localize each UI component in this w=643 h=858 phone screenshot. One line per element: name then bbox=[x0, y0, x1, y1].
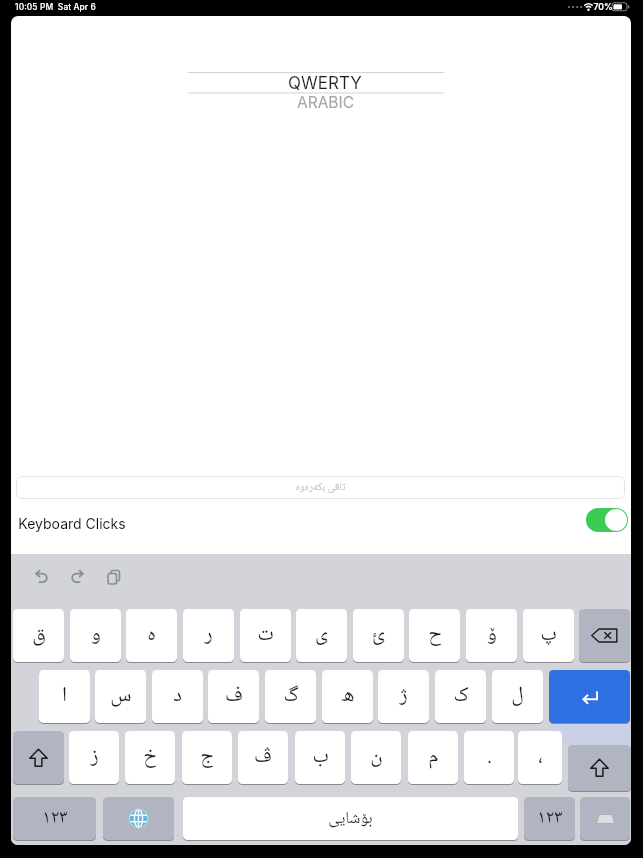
button[interactable]: ، bbox=[518, 731, 562, 784]
staticText: تاقی بکەرەوە bbox=[295, 479, 346, 497]
staticText: و bbox=[91, 618, 101, 654]
staticText: پ bbox=[540, 618, 557, 654]
staticText: ج bbox=[200, 740, 214, 776]
staticText: ل bbox=[511, 679, 524, 715]
button[interactable]: ARABIC bbox=[197, 93, 453, 112]
button[interactable]: تاقی بکەرەوە bbox=[16, 476, 625, 499]
staticText: Keyboard Clicks bbox=[18, 515, 126, 532]
button[interactable]: ن bbox=[351, 731, 401, 784]
button[interactable]: س bbox=[95, 670, 146, 723]
staticText: ڤ bbox=[254, 740, 272, 776]
staticText: ئ bbox=[372, 618, 385, 654]
staticText: گ bbox=[283, 679, 299, 715]
button[interactable] bbox=[103, 797, 174, 840]
staticText: د bbox=[173, 679, 182, 715]
button[interactable]: و bbox=[70, 609, 121, 662]
staticText: ر bbox=[204, 618, 213, 654]
staticText: ح bbox=[428, 618, 442, 654]
button[interactable]: م bbox=[408, 731, 458, 784]
staticText: 10:05 PM Sat Apr 6 bbox=[15, 2, 96, 12]
button[interactable] bbox=[69, 568, 87, 586]
button[interactable]: ا bbox=[39, 670, 90, 723]
staticText: ى bbox=[315, 618, 328, 654]
staticText: 70% bbox=[593, 2, 613, 12]
button[interactable]: ھ bbox=[322, 670, 373, 723]
staticText: م bbox=[428, 740, 439, 776]
button[interactable]: ک bbox=[435, 670, 486, 723]
staticText: QWERTY bbox=[288, 73, 362, 93]
staticText: ١٢٣ bbox=[537, 803, 563, 835]
staticText: ن bbox=[370, 740, 383, 776]
button[interactable]: QWERTY bbox=[197, 73, 453, 93]
button[interactable]: د bbox=[152, 670, 203, 723]
button[interactable]: ج bbox=[182, 731, 232, 784]
button[interactable]: ئ bbox=[353, 609, 404, 662]
button[interactable]: ژ bbox=[378, 670, 429, 723]
button[interactable]: بۆشایی bbox=[183, 797, 518, 840]
button[interactable] bbox=[580, 797, 630, 840]
staticText: س bbox=[110, 679, 132, 715]
button[interactable]: ١٢٣ bbox=[524, 797, 575, 840]
staticText: ١٢٣ bbox=[42, 803, 68, 835]
staticText: . bbox=[487, 740, 492, 776]
button[interactable]: ل bbox=[492, 670, 543, 723]
button[interactable]: ر bbox=[183, 609, 234, 662]
staticText: ف bbox=[225, 679, 243, 715]
staticText: ژ bbox=[399, 679, 408, 715]
staticText: ھ bbox=[341, 679, 355, 715]
button[interactable]: ۆ bbox=[466, 609, 517, 662]
button[interactable]: ب bbox=[295, 731, 345, 784]
button[interactable] bbox=[549, 670, 630, 723]
button[interactable] bbox=[586, 508, 628, 532]
button[interactable]: خ bbox=[125, 731, 175, 784]
staticText: ق bbox=[32, 618, 46, 654]
button[interactable]: ى bbox=[296, 609, 347, 662]
button[interactable]: ز bbox=[69, 731, 119, 784]
button[interactable]: پ bbox=[523, 609, 574, 662]
button[interactable]: گ bbox=[265, 670, 316, 723]
staticText: ز bbox=[90, 740, 99, 776]
staticText: بۆشایی bbox=[328, 805, 373, 833]
staticText: ت bbox=[257, 618, 274, 654]
button[interactable] bbox=[105, 568, 123, 586]
button[interactable]: ح bbox=[409, 609, 460, 662]
staticText: ، bbox=[538, 740, 543, 776]
button[interactable] bbox=[13, 731, 64, 784]
button[interactable]: ت bbox=[240, 609, 291, 662]
button[interactable] bbox=[568, 745, 631, 791]
button[interactable]: ف bbox=[208, 670, 259, 723]
staticText: خ bbox=[143, 740, 157, 776]
button[interactable]: ە bbox=[126, 609, 177, 662]
staticText: ە bbox=[147, 618, 156, 654]
staticText: ب bbox=[312, 740, 329, 776]
button[interactable]: ڤ bbox=[238, 731, 288, 784]
button[interactable] bbox=[579, 609, 630, 662]
button[interactable] bbox=[32, 568, 50, 586]
button[interactable]: ١٢٣ bbox=[13, 797, 96, 840]
staticText: ک bbox=[453, 679, 469, 715]
staticText: ا bbox=[62, 679, 67, 715]
staticText: ۆ bbox=[487, 618, 497, 654]
staticText: ARABIC bbox=[297, 93, 354, 112]
button[interactable]: . bbox=[464, 731, 514, 784]
button[interactable]: ق bbox=[13, 609, 64, 662]
